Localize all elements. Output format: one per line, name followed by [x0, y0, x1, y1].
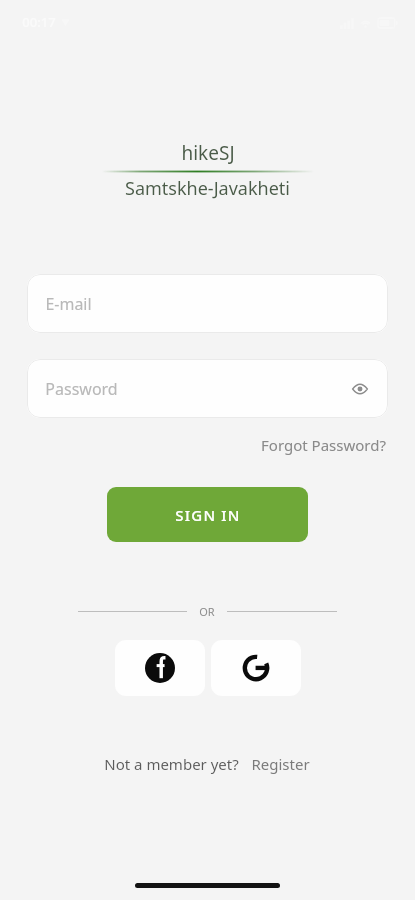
button[interactable]: Sign in with Facebook	[115, 640, 205, 696]
staticText: SIGN IN	[175, 505, 241, 525]
staticText: Forgot Password?	[261, 435, 386, 455]
staticText: Samtskhe-Javakheti	[125, 176, 290, 201]
button[interactable]: Register	[249, 752, 312, 776]
staticText: Register	[251, 754, 310, 774]
button[interactable]: Show password	[346, 375, 374, 403]
button[interactable]: Forgot Password?	[259, 433, 388, 457]
button[interactable]: SIGN IN	[107, 487, 308, 542]
button[interactable]: Password	[27, 359, 388, 418]
button[interactable]: Sign in with Google	[211, 640, 301, 696]
staticText: Not a member yet?	[104, 754, 239, 774]
staticText: E-mail	[45, 293, 92, 315]
staticText: Password	[45, 378, 118, 400]
staticText: hikeSJ	[181, 140, 235, 166]
button[interactable]: E-mail	[27, 274, 388, 333]
staticText: OR	[199, 604, 215, 619]
